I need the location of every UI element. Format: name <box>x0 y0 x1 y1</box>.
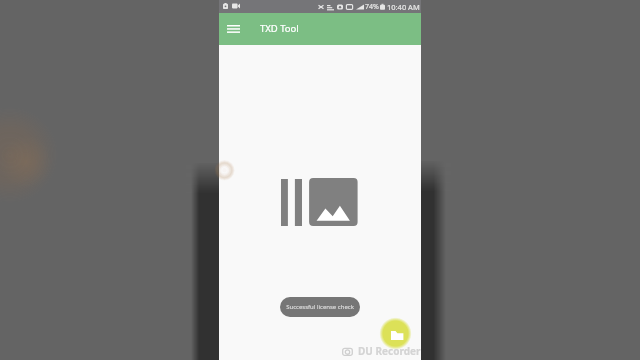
staticText: 74% <box>365 2 379 12</box>
button[interactable]: Successful license check <box>280 297 360 317</box>
staticText: Successful license check <box>286 303 354 311</box>
button[interactable]: Recorder <box>380 318 411 349</box>
staticText: DU Recorder <box>358 344 421 358</box>
button[interactable]: Open navigation drawer <box>223 19 243 39</box>
staticText: 10:40 AM <box>387 2 420 12</box>
staticText: TXD Tool <box>260 22 299 35</box>
